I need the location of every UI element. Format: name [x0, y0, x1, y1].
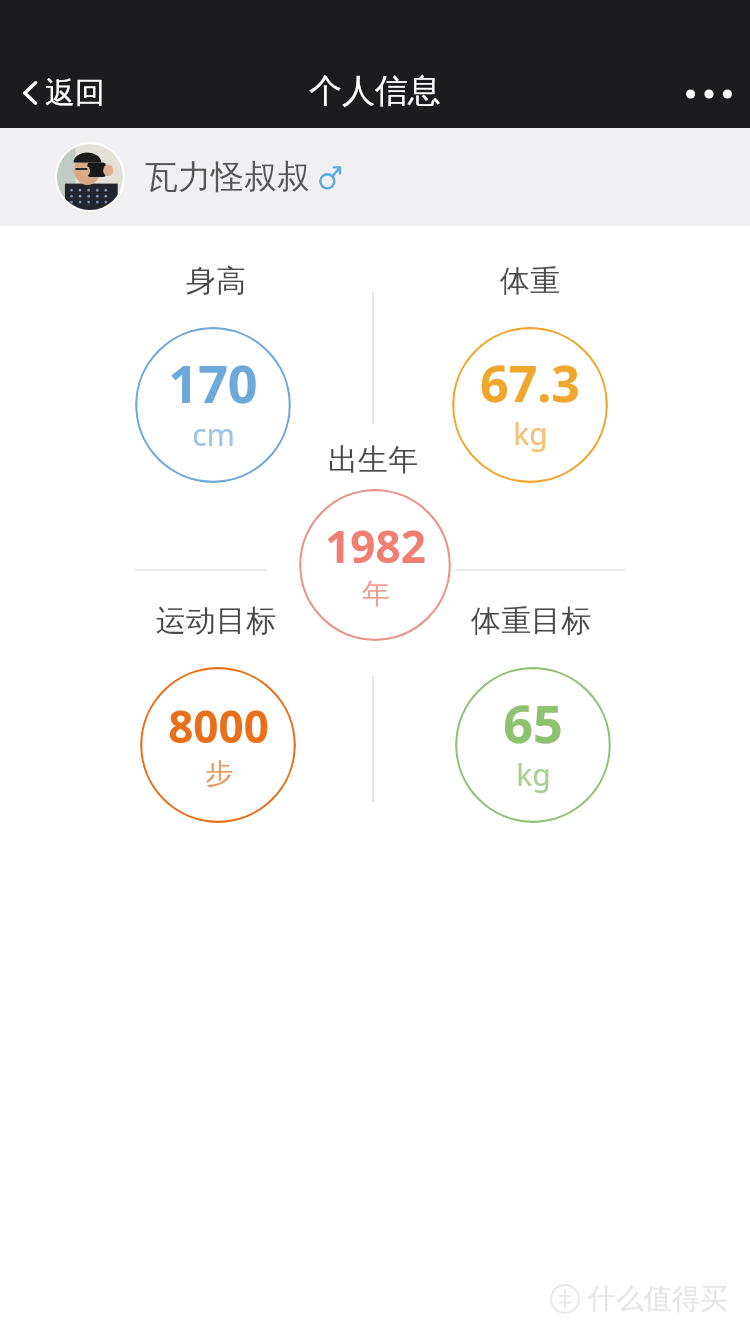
staticText: kg: [513, 413, 548, 454]
staticText: kg: [516, 754, 551, 795]
staticText: 67.3: [480, 349, 580, 417]
staticText: 瓦力怪叔叔: [145, 156, 310, 198]
staticText: 8000: [168, 696, 269, 756]
button[interactable]: 65: [455, 667, 611, 823]
staticText: 身高: [186, 262, 246, 300]
staticText: 出生年: [328, 441, 418, 479]
button[interactable]: 返回: [12, 68, 113, 118]
staticText: 体重目标: [471, 602, 591, 640]
staticText: 1982: [325, 516, 426, 576]
button[interactable]: More options: [682, 72, 736, 116]
staticText: 170: [168, 347, 258, 418]
staticText: 步: [205, 756, 233, 791]
staticText: cm: [192, 414, 235, 455]
button[interactable]: 8000: [140, 667, 296, 823]
staticText: 体重: [500, 262, 560, 300]
staticText: 返回: [45, 74, 105, 112]
staticText: 运动目标: [156, 602, 276, 640]
staticText: 65: [503, 687, 563, 758]
other: Male: [319, 165, 341, 189]
button[interactable]: 瓦力怪叔叔: [0, 128, 750, 226]
staticText: 什么值得买: [588, 1281, 728, 1316]
button[interactable]: 67.3: [452, 327, 608, 483]
button[interactable]: 170: [135, 327, 291, 483]
staticText: 个人信息: [309, 70, 441, 112]
staticText: 年: [362, 576, 390, 611]
button[interactable]: 1982: [299, 489, 451, 641]
